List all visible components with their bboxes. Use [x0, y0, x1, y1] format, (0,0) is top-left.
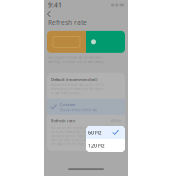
staticText: Default (recommended) — [51, 77, 97, 82]
staticText: Use a higher refresh rate for smoother — [48, 56, 102, 59]
staticText: scrolling, or a lower one to save batter… — [48, 60, 104, 64]
staticText: Refresh rate — [48, 18, 87, 27]
staticText: smoother motion. Higher refresh — [51, 134, 98, 138]
button[interactable]: Custom — [47, 99, 125, 115]
staticText: 60 Hz — [88, 129, 102, 136]
staticText: life may be shorter than usual. — [51, 142, 93, 146]
staticText: Choose a fixed refresh rate. — [59, 108, 98, 112]
button[interactable]: 60 Hz — [86, 126, 125, 139]
staticText: 9:41 — [48, 1, 62, 9]
staticText: rates use more power, so battery — [51, 138, 96, 142]
button[interactable]: Refresh rate — [47, 115, 125, 126]
staticText: You can set the refresh rate to 60 Hz — [51, 126, 102, 130]
staticText: depending on what is on the screen, — [51, 87, 105, 91]
staticText: to save battery power. — [51, 91, 81, 95]
staticText: Custom — [59, 102, 75, 107]
staticText: Adjusts the refresh rate up to 120 Hz — [51, 83, 104, 87]
button[interactable]: Default (recommended) — [47, 73, 125, 99]
staticText: for better battery life, or 120 Hz for — [51, 130, 102, 134]
staticText: 120 Hz — [88, 142, 105, 149]
button[interactable]: 120 Hz — [86, 139, 125, 152]
staticText: 60 Hz — [111, 118, 121, 123]
button[interactable]: Back — [46, 10, 54, 18]
staticText: Refresh rate — [51, 118, 75, 123]
